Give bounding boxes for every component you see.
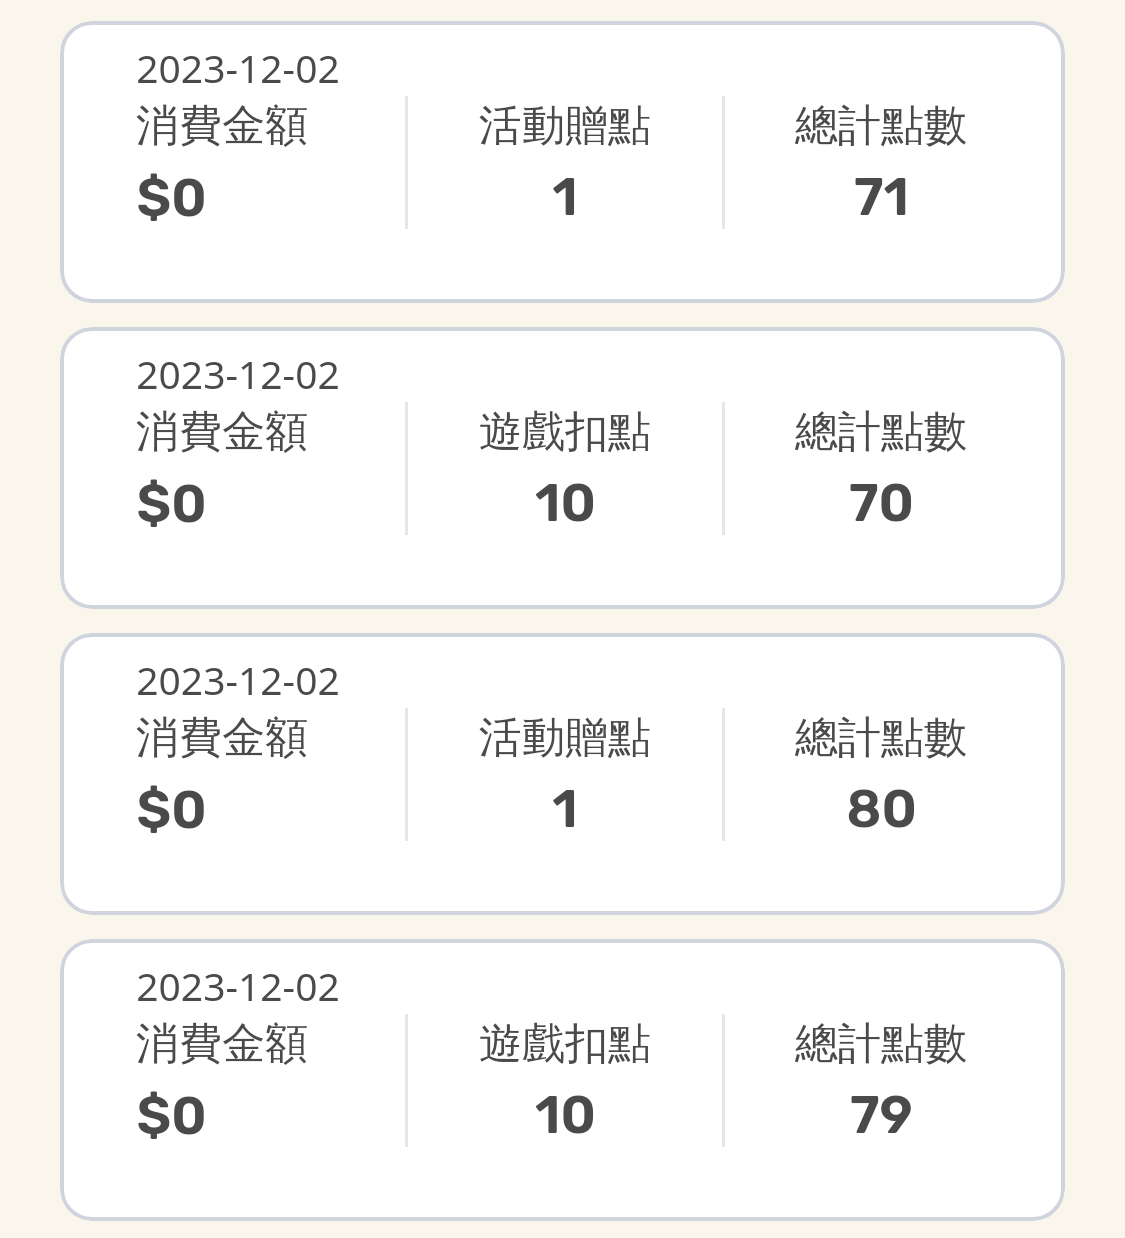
staticText: 2023-12-02 [136,41,340,94]
staticText: 2023-12-02 [136,347,340,400]
staticText: 79 [850,1083,913,1146]
staticText: 消費金額 [136,1017,308,1071]
staticText: 70 [849,471,914,534]
staticText: 2023-12-02 [136,653,340,706]
staticText: 活動贈點 [479,711,651,765]
staticText: 10 [535,1083,596,1146]
staticText: $0 [136,472,207,535]
staticText: 遊戲扣點 [479,1017,651,1071]
staticText: 總計點數 [795,99,967,153]
staticText: 消費金額 [136,405,308,459]
staticText: 活動贈點 [479,99,651,153]
staticText: 遊戲扣點 [479,405,651,459]
staticText: 71 [854,165,909,228]
staticText: 1 [552,777,578,840]
staticText: 消費金額 [136,711,308,765]
staticText: $0 [136,166,207,229]
button[interactable]: 2023-12-02 [60,939,1065,1221]
staticText: 總計點數 [795,405,967,459]
staticText: 消費金額 [136,99,308,153]
staticText: 總計點數 [795,1017,967,1071]
staticText: $0 [136,1084,207,1147]
button[interactable]: 2023-12-02 [60,327,1065,609]
staticText: 10 [535,471,596,534]
staticText: 2023-12-02 [136,959,340,1012]
staticText: 80 [846,777,917,840]
staticText: $0 [136,778,207,841]
staticText: 1 [552,165,578,228]
button[interactable]: 2023-12-02 [60,21,1065,303]
button[interactable]: 2023-12-02 [60,633,1065,915]
staticText: 總計點數 [795,711,967,765]
